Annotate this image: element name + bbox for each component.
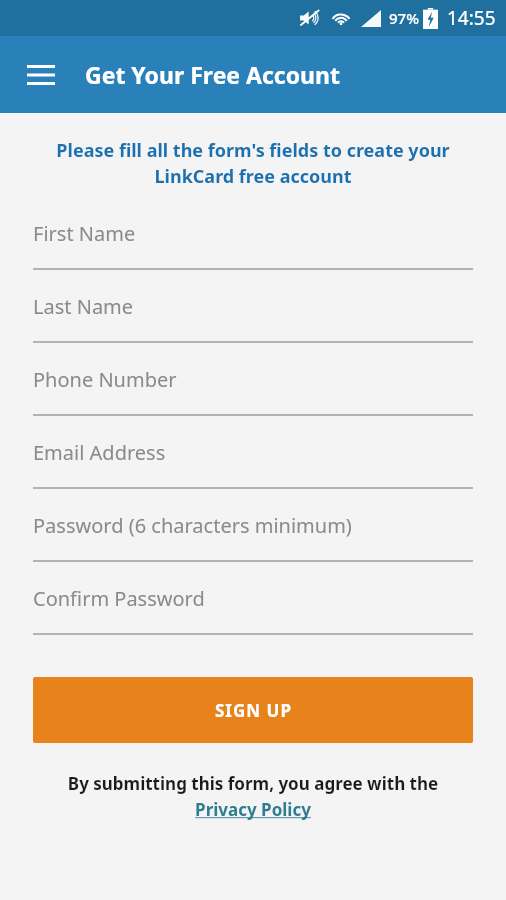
button[interactable]: Open navigation menu: [14, 48, 68, 102]
button[interactable]: Last Name: [33, 284, 473, 357]
button[interactable]: SIGN UP: [33, 677, 473, 743]
button[interactable]: First Name: [33, 211, 473, 284]
button[interactable]: Confirm Password: [33, 576, 473, 649]
staticText: 97%: [389, 8, 419, 28]
button[interactable]: Email Address: [33, 430, 473, 503]
staticText: SIGN UP: [215, 699, 292, 722]
staticText: Confirm Password: [33, 585, 205, 612]
staticText: Please fill all the form's fields to cre…: [24, 138, 482, 188]
staticText: 14:55: [447, 5, 496, 31]
button[interactable]: Privacy Policy: [191, 797, 315, 822]
staticText: Last Name: [33, 293, 134, 320]
staticText: Password (6 characters minimum): [33, 512, 352, 539]
button[interactable]: Password (6 characters minimum): [33, 503, 473, 576]
staticText: First Name: [33, 220, 136, 247]
staticText: Email Address: [33, 439, 166, 466]
staticText: Phone Number: [33, 366, 177, 393]
staticText: By submitting this form, you agree with …: [0, 772, 506, 795]
staticText: Get Your Free Account: [85, 59, 340, 90]
button[interactable]: Phone Number: [33, 357, 473, 430]
